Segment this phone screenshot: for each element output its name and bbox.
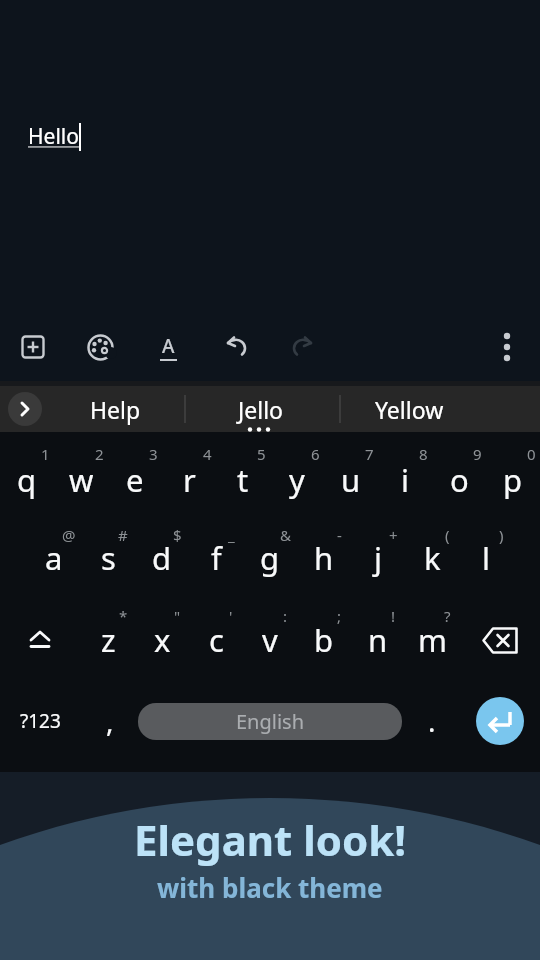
button[interactable]: ?123 — [13, 694, 67, 748]
staticText: n — [368, 619, 388, 661]
staticText: ? — [444, 606, 451, 626]
staticText: ! — [391, 606, 396, 626]
staticText: 5 — [257, 444, 266, 464]
staticText: t — [237, 459, 249, 501]
staticText: : — [283, 606, 288, 626]
button[interactable] — [16, 330, 50, 364]
button[interactable] — [219, 330, 253, 364]
staticText: Yellow — [375, 394, 444, 425]
staticText: ; — [337, 606, 342, 626]
staticText: c — [209, 619, 224, 661]
staticText: k — [424, 537, 441, 579]
button[interactable]: A — [151, 330, 185, 364]
button[interactable] — [286, 330, 320, 364]
staticText: a — [45, 537, 63, 579]
staticText: ) — [499, 525, 504, 545]
staticText: Jello — [238, 394, 284, 425]
staticText: s — [101, 537, 116, 579]
staticText: p — [503, 459, 523, 501]
staticText: i — [401, 459, 409, 501]
staticText: Help — [90, 394, 141, 425]
staticText: w — [69, 459, 94, 501]
staticText: b — [314, 619, 334, 661]
staticText: . — [428, 702, 436, 740]
staticText: , — [106, 702, 114, 740]
staticText: Elegant look! — [134, 811, 407, 868]
staticText: m — [418, 619, 447, 661]
button[interactable] — [83, 330, 117, 364]
staticText: 1 — [41, 444, 50, 464]
staticText: 0 — [527, 444, 536, 464]
staticText: o — [450, 459, 469, 501]
staticText: f — [211, 537, 222, 579]
staticText: d — [152, 537, 172, 579]
button[interactable] — [13, 613, 67, 667]
staticText: v — [262, 619, 278, 661]
button[interactable]: Help — [60, 386, 170, 432]
staticText: r — [183, 459, 196, 501]
staticText: $ — [173, 525, 182, 545]
staticText: * — [119, 606, 128, 626]
staticText: q — [17, 459, 37, 501]
staticText: 4 — [203, 444, 212, 464]
staticText: 8 — [419, 444, 428, 464]
staticText: # — [118, 525, 128, 545]
staticText: + — [389, 525, 398, 545]
staticText: " — [174, 606, 181, 626]
button[interactable] — [473, 613, 527, 667]
button[interactable]: Yellow — [354, 386, 464, 432]
button[interactable] — [490, 330, 524, 364]
button[interactable]: Hello — [28, 122, 81, 151]
staticText: with black theme — [157, 870, 383, 905]
staticText: 7 — [365, 444, 374, 464]
button[interactable]: Jello — [206, 386, 316, 432]
staticText: l — [482, 537, 490, 579]
staticText: u — [341, 459, 361, 501]
staticText: 9 — [473, 444, 482, 464]
staticText: _ — [228, 525, 235, 545]
staticText: z — [101, 619, 116, 661]
button[interactable]: English — [138, 703, 402, 740]
staticText: e — [126, 459, 144, 501]
staticText: 2 — [95, 444, 104, 464]
staticText: 6 — [311, 444, 320, 464]
staticText: @ — [62, 525, 76, 545]
staticText: g — [260, 537, 280, 579]
staticText: A — [162, 333, 175, 359]
staticText: h — [314, 537, 334, 579]
staticText: English — [236, 708, 305, 735]
staticText: ' — [229, 606, 233, 626]
staticText: & — [280, 525, 291, 545]
staticText: Hello — [28, 122, 79, 151]
button[interactable] — [8, 392, 42, 426]
staticText: y — [289, 459, 305, 501]
staticText: ( — [445, 525, 450, 545]
staticText: x — [154, 619, 171, 661]
staticText: j — [374, 537, 382, 579]
button[interactable] — [476, 697, 524, 745]
staticText: - — [337, 525, 342, 545]
staticText: 3 — [149, 444, 158, 464]
staticText: ?123 — [20, 708, 61, 734]
